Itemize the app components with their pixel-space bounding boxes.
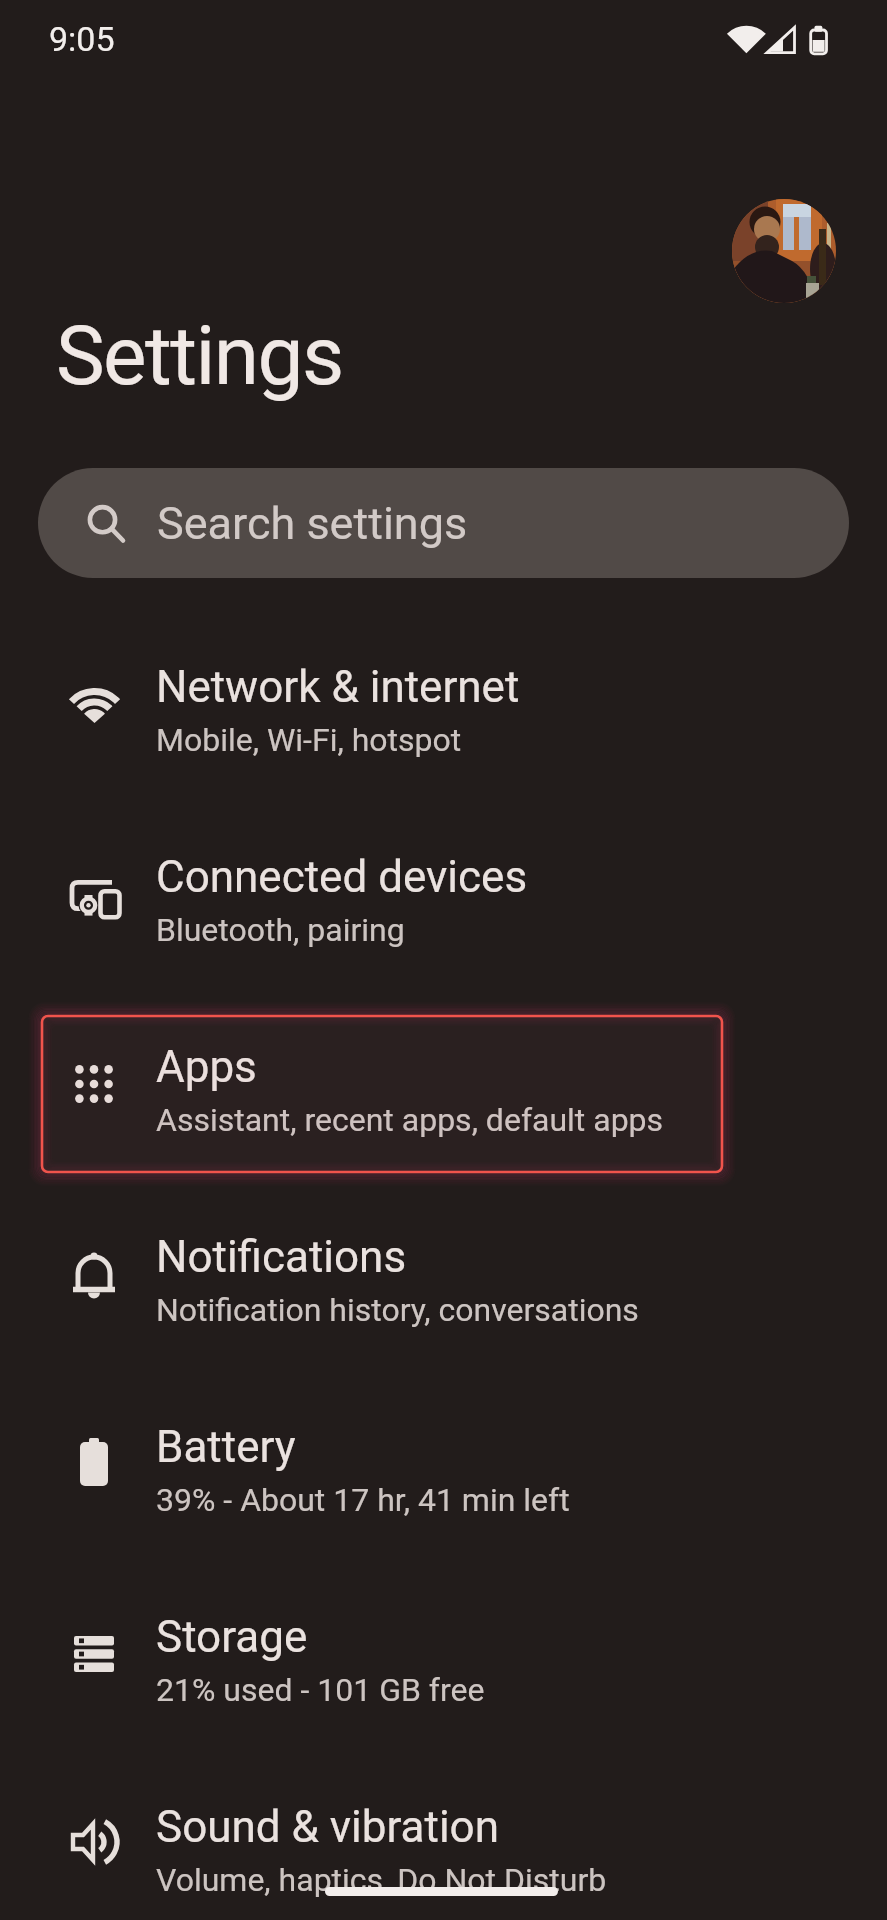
- staticText: Network & internet: [156, 661, 520, 713]
- staticText: 21% used - 101 GB free: [156, 1671, 485, 1709]
- button[interactable]: Search settings: [38, 468, 849, 578]
- staticText: Storage: [156, 1611, 308, 1663]
- button[interactable]: Sound & vibration: [0, 1755, 887, 1920]
- staticText: Sound & vibration: [156, 1801, 499, 1853]
- staticText: 9:05: [49, 19, 115, 59]
- button[interactable]: Battery: [0, 1375, 887, 1565]
- staticText: Notifications: [156, 1231, 407, 1283]
- button[interactable]: Connected devices: [0, 805, 887, 995]
- staticText: Assistant, recent apps, default apps: [156, 1101, 664, 1139]
- staticText: Connected devices: [156, 851, 528, 903]
- staticText: Volume, haptics, Do Not Disturb: [156, 1861, 607, 1899]
- staticText: Settings: [56, 308, 343, 404]
- button[interactable]: Notifications: [0, 1185, 887, 1375]
- button[interactable]: Storage: [0, 1565, 887, 1755]
- button[interactable]: [732, 199, 836, 303]
- staticText: Search settings: [157, 497, 468, 550]
- staticText: Notification history, conversations: [156, 1291, 639, 1329]
- staticText: 39% - About 17 hr, 41 min left: [156, 1481, 570, 1519]
- button[interactable]: Apps: [0, 995, 887, 1185]
- staticText: Battery: [156, 1421, 296, 1473]
- staticText: Bluetooth, pairing: [156, 911, 405, 949]
- staticText: Mobile, Wi-Fi, hotspot: [156, 721, 462, 759]
- button[interactable]: Network & internet: [0, 615, 887, 805]
- staticText: Apps: [156, 1041, 257, 1093]
